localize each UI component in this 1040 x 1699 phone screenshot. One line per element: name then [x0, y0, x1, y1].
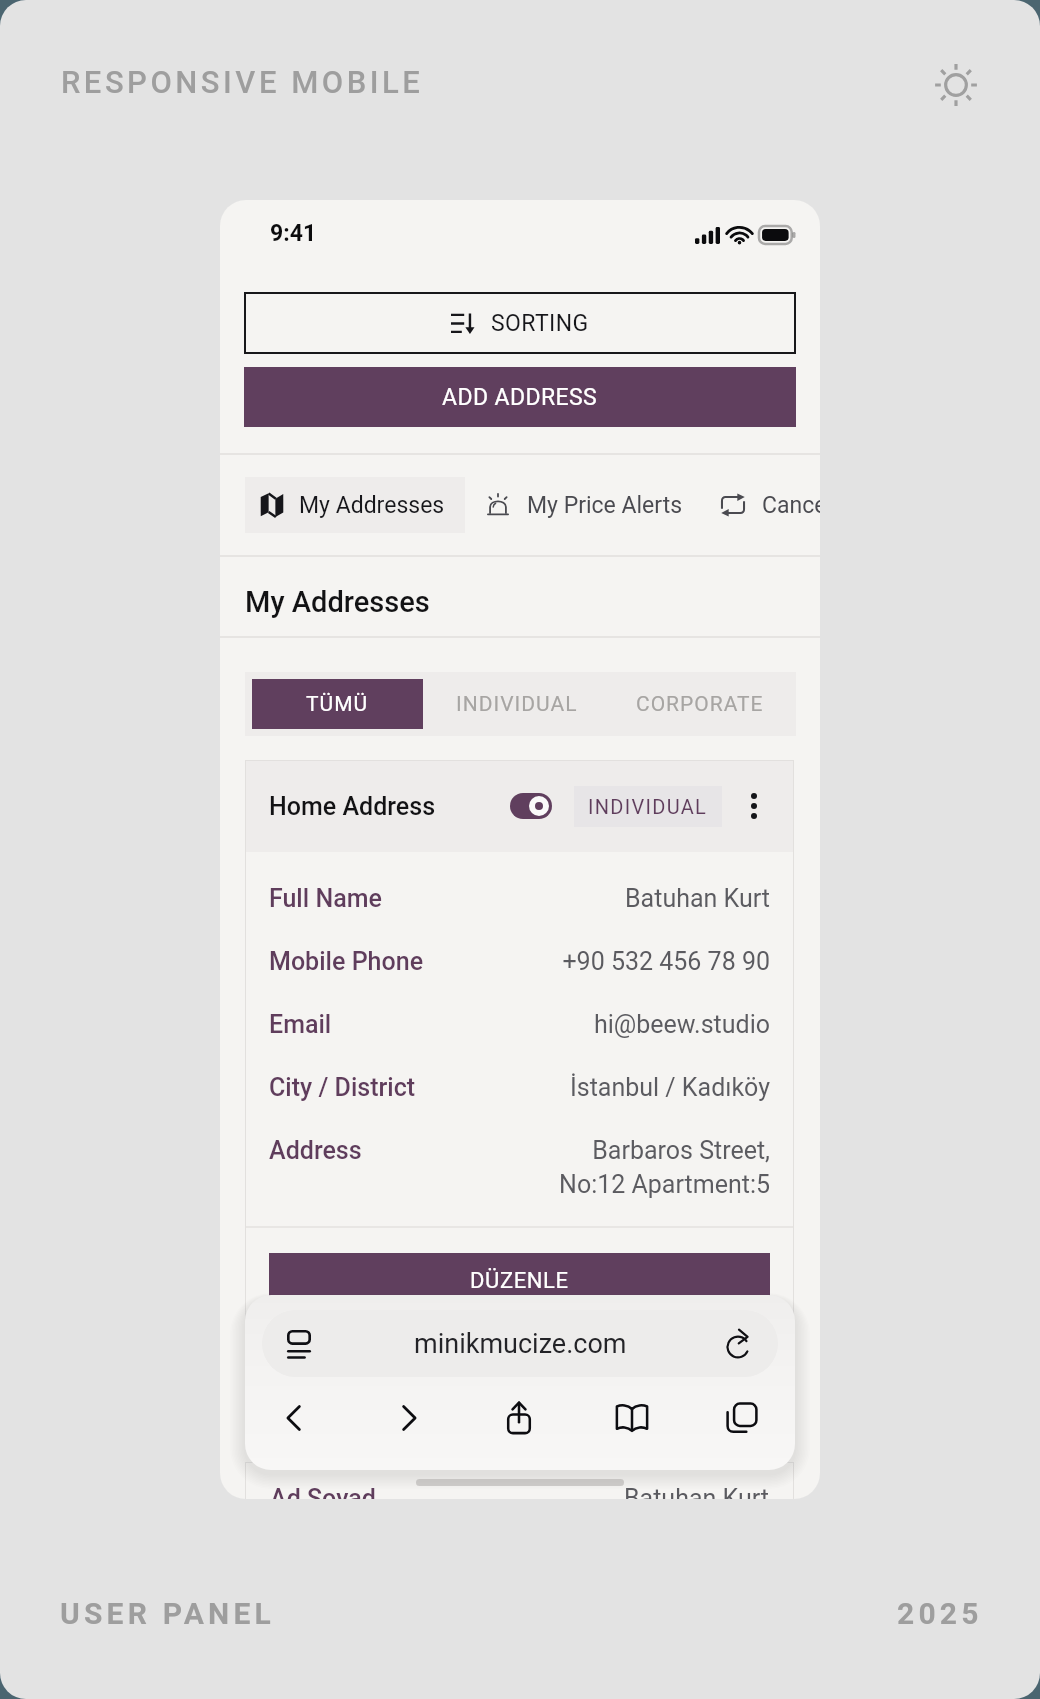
staticText: Home Address [269, 792, 436, 821]
staticText: +90 532 456 78 90 [562, 947, 770, 976]
staticText: INDIVIDUAL [588, 795, 708, 818]
staticText: CORPORATE [636, 692, 764, 717]
staticText: Cancelled [762, 492, 820, 519]
button[interactable]: Tabs [717, 1393, 767, 1443]
staticText: Batuhan Kurt [625, 884, 770, 913]
staticText: ADD ADDRESS [442, 384, 598, 411]
staticText: My Addresses [299, 492, 445, 519]
button[interactable]: Toggle address active [510, 793, 552, 819]
staticText: City / District [269, 1073, 416, 1102]
button[interactable]: Page settings [262, 1310, 778, 1377]
staticText: 9:41 [270, 220, 317, 247]
staticText: 2025 [897, 1596, 983, 1631]
button[interactable]: Toggle theme [927, 56, 985, 114]
staticText: RESPONSIVE MOBILE [61, 64, 424, 100]
staticText: Ad Soyad [270, 1484, 376, 1499]
button[interactable]: ADD ADDRESS [244, 367, 796, 427]
staticText: hi@beew.studio [593, 1010, 770, 1039]
button[interactable]: INDIVIDUAL [574, 786, 722, 827]
staticText: İstanbul / Kadıköy [569, 1073, 770, 1102]
staticText: USER PANEL [60, 1596, 275, 1631]
button[interactable]: INDIVIDUAL [423, 679, 611, 729]
button[interactable]: My Addresses [245, 477, 465, 533]
staticText: My Price Alerts [527, 492, 683, 519]
staticText: Full Name [269, 884, 382, 913]
button[interactable]: Forward [384, 1393, 434, 1443]
staticText: Address [269, 1136, 362, 1165]
staticText: minikmucize.com [414, 1328, 627, 1360]
staticText: DÜZENLE [470, 1268, 569, 1294]
staticText: Batuhan Kurt [624, 1484, 769, 1499]
staticText: INDIVIDUAL [456, 692, 578, 717]
staticText: Mobile Phone [269, 947, 424, 976]
button[interactable]: Cancelled [721, 477, 820, 533]
staticText: SORTING [491, 310, 589, 337]
staticText: Barbaros Street, No:12 Apartment:5 [559, 1136, 770, 1199]
button[interactable]: SORTING [244, 292, 796, 354]
staticText: Email [269, 1010, 332, 1039]
staticText: TÜMÜ [306, 692, 369, 717]
button[interactable]: Bookmarks [607, 1393, 657, 1443]
staticText: My Addresses [245, 585, 430, 619]
button[interactable]: DÜZENLE [269, 1253, 770, 1309]
button[interactable]: Share [494, 1393, 544, 1443]
button[interactable]: More options [736, 788, 772, 824]
other: Reload [722, 1327, 756, 1361]
button[interactable]: Back [269, 1393, 319, 1443]
button[interactable]: My Price Alerts [486, 477, 683, 533]
button[interactable]: CORPORATE [611, 679, 789, 729]
button[interactable]: TÜMÜ [252, 679, 423, 729]
other: Page settings [282, 1327, 316, 1361]
